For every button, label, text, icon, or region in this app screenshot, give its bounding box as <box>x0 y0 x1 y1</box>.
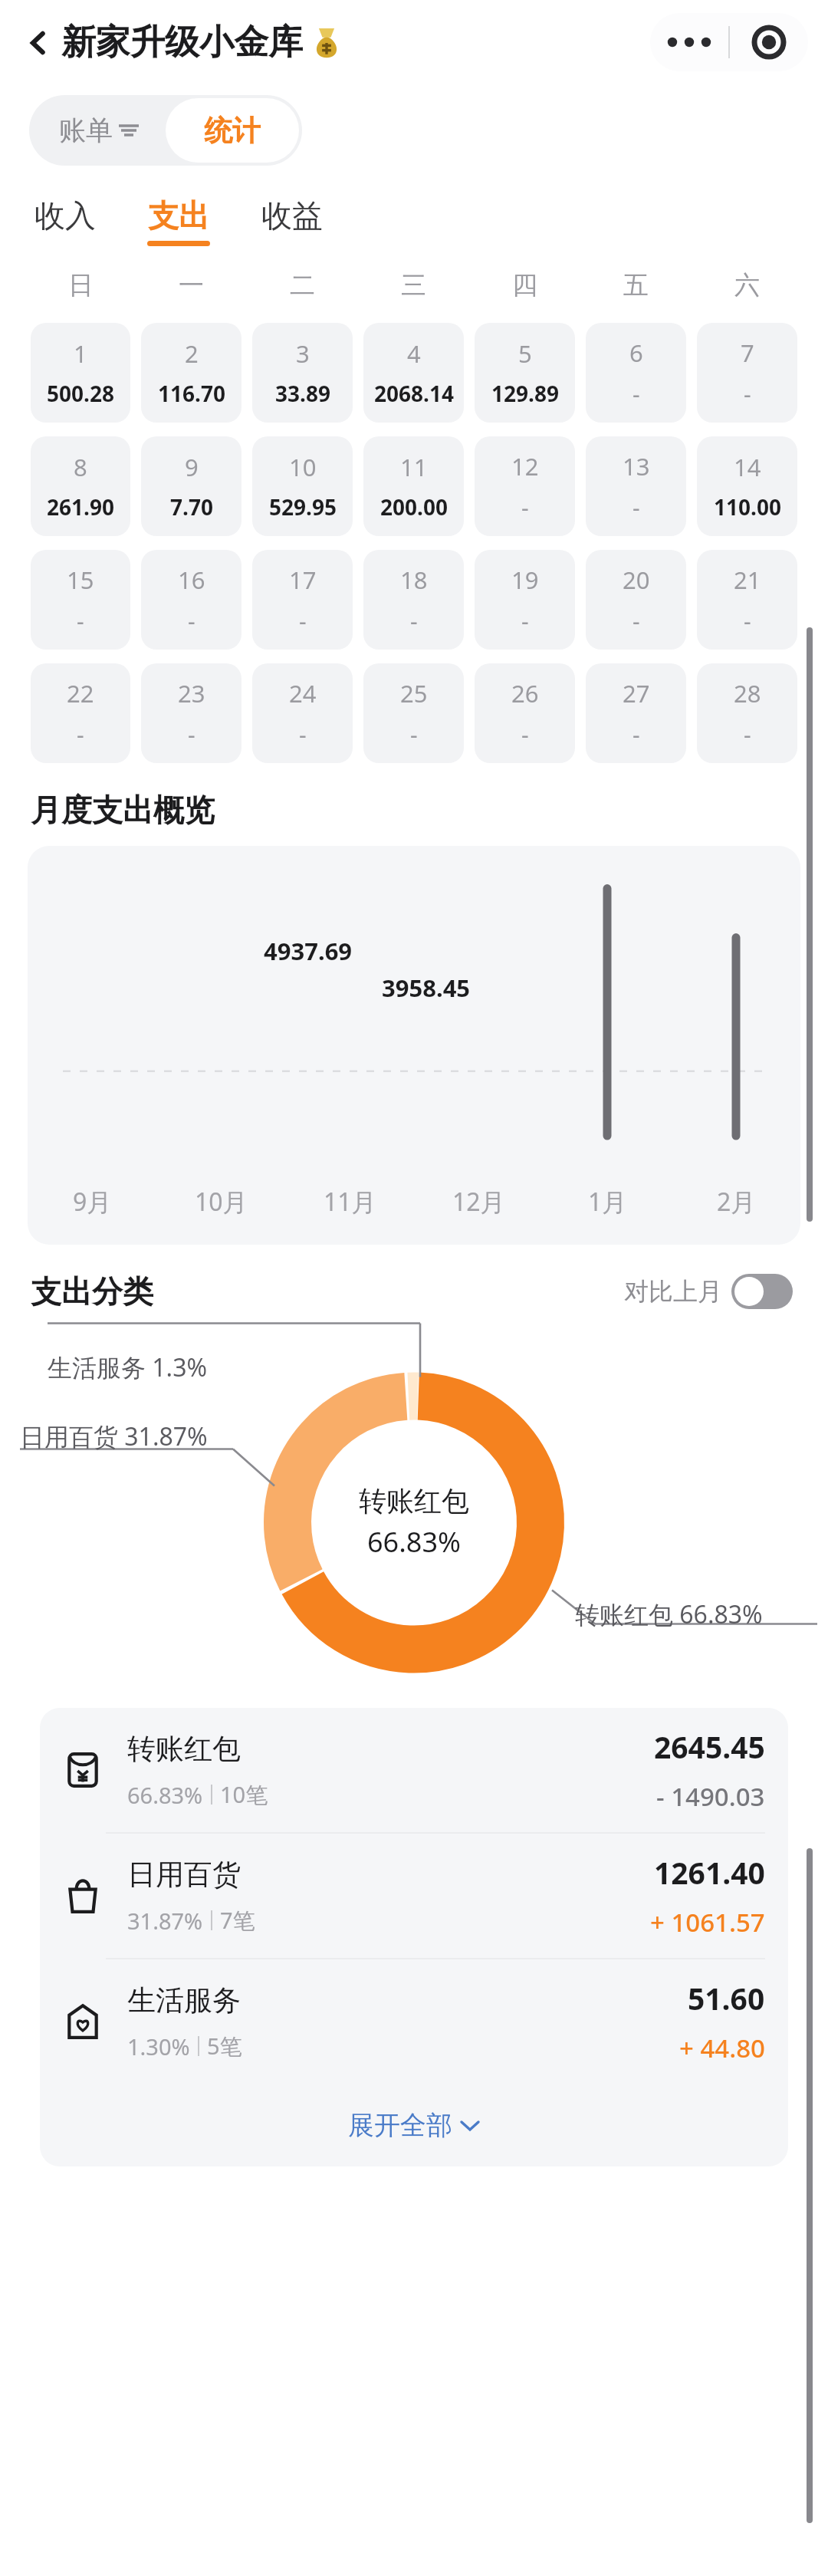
staticText: 展开全部 <box>348 2109 452 2142</box>
staticText: 5笔 <box>207 2031 242 2061</box>
button[interactable]: 9 <box>141 436 242 536</box>
staticText: 261.90 <box>47 492 114 521</box>
staticText: 66.83% <box>127 1780 203 1810</box>
button[interactable]: 22 <box>31 663 130 763</box>
staticText: 生活服务 <box>127 1982 241 2018</box>
button[interactable]: 4 <box>363 323 464 423</box>
staticText: 四 <box>512 269 537 301</box>
button[interactable]: Close <box>730 13 808 71</box>
button[interactable]: 24 <box>252 663 353 763</box>
button[interactable]: 28 <box>697 663 797 763</box>
staticText: + 1061.57 <box>650 1905 765 1939</box>
button[interactable]: 8 <box>31 436 130 536</box>
staticText: - <box>410 719 418 750</box>
staticText: 20 <box>623 564 650 596</box>
staticText: 17 <box>289 564 317 596</box>
staticText: - <box>521 719 529 750</box>
staticText: 转账红包 66.83% <box>575 1597 763 1631</box>
staticText: 6 <box>629 337 643 369</box>
staticText: 7 <box>741 337 754 369</box>
button[interactable]: 21 <box>697 550 797 650</box>
staticText: 12月 <box>452 1185 505 1219</box>
button[interactable]: 18 <box>363 550 464 650</box>
button[interactable]: 收益 <box>253 193 331 249</box>
staticText: 9月 <box>73 1185 112 1219</box>
staticText: 19 <box>511 564 539 596</box>
staticText: 10月 <box>195 1185 248 1219</box>
button[interactable]: 10 <box>252 436 353 536</box>
button[interactable]: 27 <box>586 663 686 763</box>
staticText: 33.89 <box>275 379 330 408</box>
button[interactable]: 20 <box>586 550 686 650</box>
staticText: 新家升级小金库 <box>61 21 303 64</box>
staticText: 13 <box>623 450 650 482</box>
staticText: 转账红包 <box>359 1484 469 1518</box>
staticText: 三 <box>401 269 426 301</box>
other: Back <box>25 29 52 57</box>
button[interactable]: 7 <box>697 323 797 423</box>
button[interactable]: 生活服务 <box>40 1959 788 2084</box>
staticText: 2645.45 <box>654 1726 765 1767</box>
staticText: - <box>188 605 195 637</box>
button[interactable]: 23 <box>141 663 242 763</box>
button[interactable]: 1 <box>31 323 130 423</box>
button[interactable]: 13 <box>586 436 686 536</box>
button[interactable]: 5 <box>475 323 575 423</box>
button[interactable]: 15 <box>31 550 130 650</box>
button[interactable]: 25 <box>363 663 464 763</box>
staticText: 10 <box>289 451 317 483</box>
staticText: 收入 <box>34 196 96 235</box>
button[interactable]: 2 <box>141 323 242 423</box>
staticText: 4937.69 <box>264 935 353 967</box>
staticText: 129.89 <box>491 379 559 408</box>
button[interactable]: Back <box>20 13 347 72</box>
button[interactable]: 支出 <box>140 193 218 249</box>
staticText: 529.95 <box>269 492 337 521</box>
staticText: - <box>632 605 640 637</box>
button[interactable]: 11 <box>363 436 464 536</box>
staticText: 26 <box>511 677 539 709</box>
staticText: 500.28 <box>47 379 114 408</box>
button[interactable]: 17 <box>252 550 353 650</box>
button[interactable]: 19 <box>475 550 575 650</box>
button[interactable]: 16 <box>141 550 242 650</box>
button[interactable]: 收入 <box>26 193 104 249</box>
button[interactable]: 转账红包 <box>40 1708 788 1832</box>
staticText: 18 <box>400 564 428 596</box>
staticText: - <box>77 719 84 750</box>
staticText: 2 <box>185 337 199 370</box>
button[interactable]: 3 <box>252 323 353 423</box>
staticText: 14 <box>734 451 761 483</box>
staticText: 200.00 <box>380 492 448 521</box>
staticText: 28 <box>734 677 761 709</box>
staticText: 22 <box>67 677 94 709</box>
staticText: 51.60 <box>688 1978 765 2018</box>
staticText: 日用百货 31.87% <box>20 1420 208 1453</box>
button[interactable]: 12 <box>475 436 575 536</box>
staticText: 12 <box>511 450 539 482</box>
staticText: 23 <box>178 677 205 709</box>
button[interactable]: 6 <box>586 323 686 423</box>
button[interactable]: 账单 <box>32 98 166 163</box>
button[interactable]: 14 <box>697 436 797 536</box>
staticText: + 44.80 <box>679 2031 765 2065</box>
staticText: - <box>744 719 751 750</box>
staticText: 8 <box>74 451 87 483</box>
staticText: 2月 <box>717 1185 756 1219</box>
button[interactable]: More options <box>650 13 728 71</box>
button[interactable]: 日用百货 <box>40 1834 788 1958</box>
staticText: 生活服务 1.3% <box>48 1351 208 1384</box>
staticText: 支出 <box>148 196 209 235</box>
button[interactable]: 26 <box>475 663 575 763</box>
button[interactable]: 统计 <box>166 98 299 163</box>
staticText: 25 <box>400 677 428 709</box>
staticText: 66.83% <box>367 1523 461 1561</box>
staticText: 账单 <box>59 114 113 147</box>
button[interactable]: 展开全部 <box>40 2084 788 2166</box>
staticText: 六 <box>734 269 760 301</box>
staticText: 支出分类 <box>31 1272 153 1311</box>
staticText: - <box>299 719 307 750</box>
button[interactable]: 对比上月 <box>619 1269 797 1314</box>
staticText: 日 <box>68 269 94 301</box>
staticText: 五 <box>623 269 649 301</box>
